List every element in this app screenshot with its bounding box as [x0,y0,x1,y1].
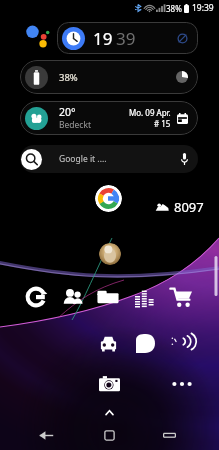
staticText: 19 [93,27,113,50]
button[interactable]: Files [97,286,119,308]
button[interactable]: 8097 [155,198,204,216]
other: Expand [106,409,113,416]
button[interactable]: Google [95,185,122,212]
staticText: # 15 [154,118,171,129]
staticText: Bedeckt [59,119,92,131]
button[interactable]: Contacts [62,287,83,308]
button[interactable]: Chrome [26,287,46,307]
button[interactable]: 20° [20,101,198,135]
staticText: 38% [166,3,182,14]
button[interactable]: Equalizer [135,287,155,307]
button[interactable]: NFC [136,334,155,353]
button[interactable]: Shop [170,286,192,308]
button[interactable]: 38% [20,60,198,94]
staticText: 19:39 [192,2,214,14]
button[interactable]: Smart connect [171,330,194,353]
button[interactable]: Google Assistant [20,19,52,51]
button[interactable]: More [172,374,192,394]
staticText: 8097 [174,198,204,216]
button[interactable]: Back [36,425,57,446]
button[interactable]: Profile [99,243,121,265]
staticText: Google it .... [59,153,107,165]
button[interactable]: 19 [57,22,198,54]
button[interactable]: Recents [159,425,180,446]
button[interactable]: Camera [99,374,120,395]
other: Alarm off [177,33,188,44]
other: Voice search [181,153,188,165]
staticText: Mo. 09 Apr. [129,107,171,118]
staticText: 20° [59,105,76,119]
button[interactable]: Car mode [99,334,118,353]
staticText: 38% [59,71,78,84]
staticText: 39 [116,27,136,50]
button[interactable]: Home [99,425,120,446]
button[interactable]: Search [20,145,198,173]
other: Search [21,149,42,170]
